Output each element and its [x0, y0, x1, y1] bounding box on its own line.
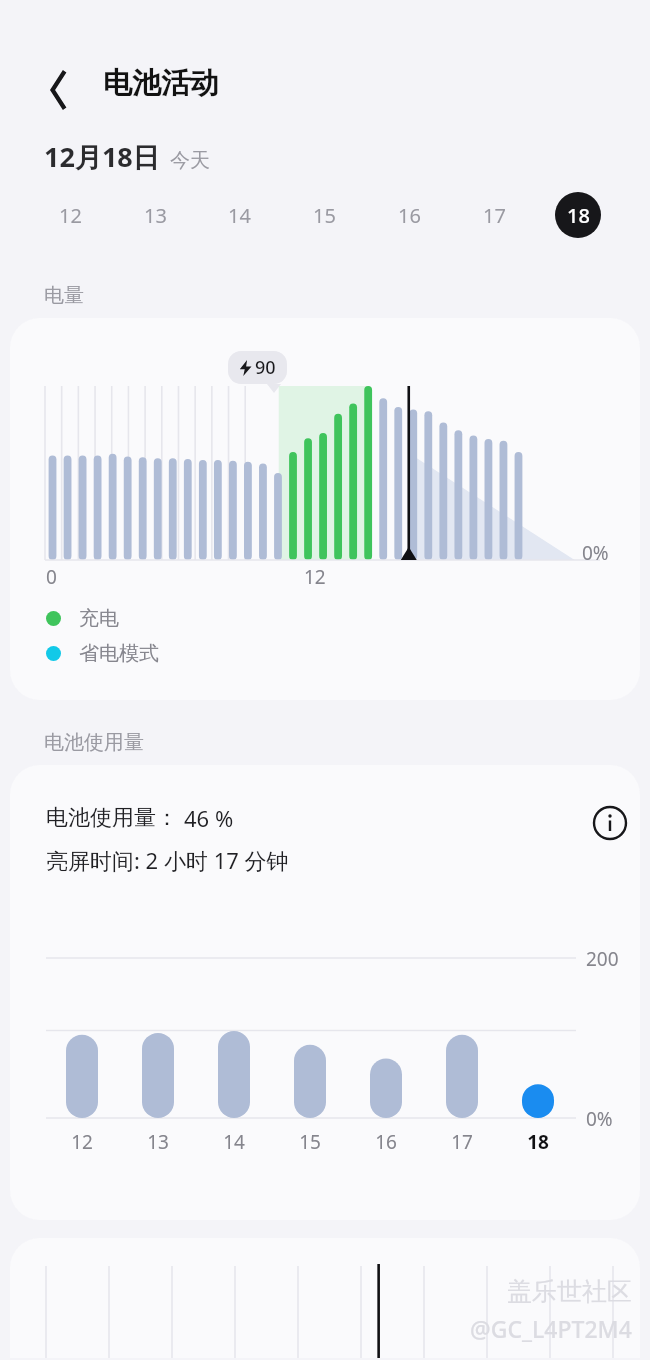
button[interactable]: Back: [30, 62, 86, 118]
staticText: 14: [228, 202, 251, 229]
button[interactable]: Info: [586, 799, 634, 847]
staticText: 亮屏时间: 2 小时 17 分钟: [46, 845, 289, 875]
staticText: 12: [59, 202, 82, 229]
staticText: 13: [144, 202, 167, 229]
staticText: 18: [567, 202, 590, 229]
staticText: 14: [223, 1129, 245, 1155]
button[interactable]: 16: [364, 1127, 408, 1157]
staticText: 今天: [170, 148, 210, 173]
staticText: 15: [313, 202, 336, 229]
button[interactable]: 15: [288, 1127, 332, 1157]
button[interactable]: 18: [555, 192, 601, 238]
staticText: 18: [527, 1129, 549, 1155]
staticText: 盖乐世社区: [507, 1276, 632, 1307]
staticText: 电池使用量: [44, 730, 144, 755]
staticText: 200: [586, 946, 619, 972]
button[interactable]: 17: [471, 192, 517, 238]
button[interactable]: 13: [132, 192, 178, 238]
button[interactable]: 14: [212, 1127, 256, 1157]
button[interactable]: 13: [136, 1127, 180, 1157]
button[interactable]: 12: [47, 192, 93, 238]
staticText: 充电: [79, 606, 119, 631]
staticText: 90: [255, 355, 276, 380]
staticText: 电池使用量：: [46, 804, 178, 832]
staticText: 0: [46, 564, 57, 590]
button[interactable]: 17: [440, 1127, 484, 1157]
button[interactable]: 16: [386, 192, 432, 238]
staticText: @GC_L4PT2M4: [470, 1313, 632, 1344]
staticText: 0%: [586, 1106, 613, 1132]
staticText: 46 %: [184, 803, 234, 833]
staticText: 0%: [582, 540, 609, 566]
staticText: 电池活动: [103, 65, 219, 102]
staticText: 12: [71, 1129, 93, 1155]
staticText: 省电模式: [79, 641, 159, 666]
staticText: 16: [375, 1129, 397, 1155]
staticText: 12月18日: [44, 138, 160, 175]
staticText: 13: [147, 1129, 169, 1155]
staticText: 电量: [44, 283, 84, 308]
staticText: 16: [398, 202, 421, 229]
staticText: 17: [483, 202, 506, 229]
button[interactable]: 14: [216, 192, 262, 238]
button[interactable]: 12: [60, 1127, 104, 1157]
staticText: 15: [299, 1129, 321, 1155]
staticText: 12: [304, 564, 326, 590]
staticText: 17: [451, 1129, 473, 1155]
button[interactable]: [10, 1238, 640, 1358]
button[interactable]: 90: [10, 318, 640, 700]
button[interactable]: 15: [301, 192, 347, 238]
button[interactable]: 18: [516, 1127, 560, 1157]
button[interactable]: 电池使用量：: [10, 765, 640, 1220]
